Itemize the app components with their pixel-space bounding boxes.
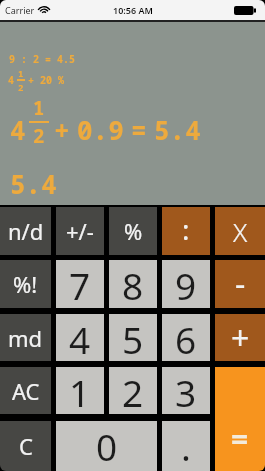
button[interactable]: - [215, 260, 265, 308]
staticText: %! [13, 269, 38, 299]
staticText: 2 [18, 81, 24, 93]
button[interactable]: md [0, 314, 51, 361]
button[interactable]: 1 [56, 367, 104, 414]
staticText: C [19, 431, 33, 461]
staticText: 1 [69, 367, 91, 414]
staticText: 0.9 [77, 112, 124, 147]
button[interactable]: 5 [109, 314, 157, 361]
staticText: 4 [10, 112, 26, 147]
button[interactable]: 6 [162, 314, 210, 361]
staticText: 7 [69, 260, 91, 308]
button[interactable]: 9 [162, 260, 210, 308]
staticText: AC [12, 376, 40, 406]
button[interactable]: : [162, 207, 210, 255]
button[interactable]: 2 [109, 367, 157, 414]
staticText: 9 : 2 = 4.5 [9, 52, 75, 66]
button[interactable]: 3 [162, 367, 210, 414]
staticText: 0 [96, 421, 118, 471]
button[interactable]: 4 [56, 314, 104, 361]
staticText: n/d [8, 216, 44, 246]
staticText: . [181, 421, 191, 471]
staticText: 4 [69, 314, 91, 361]
staticText: 10:56 AM [113, 4, 153, 16]
staticText: 5.4 [10, 166, 57, 201]
staticText: 3 [175, 367, 197, 414]
staticText: 8 [122, 260, 144, 308]
staticText: 1 [18, 67, 24, 79]
staticText: md [8, 323, 43, 353]
button[interactable]: 7 [56, 260, 104, 308]
button[interactable]: %! [0, 260, 51, 308]
staticText: = [131, 112, 147, 147]
button[interactable]: 8 [109, 260, 157, 308]
staticText: 2 [33, 123, 45, 149]
staticText: 5.4 [154, 112, 201, 147]
staticText: Carrier [5, 4, 35, 16]
button[interactable]: 0 [56, 421, 157, 471]
button[interactable]: X [215, 207, 265, 255]
button[interactable]: + [215, 314, 265, 361]
button[interactable]: AC [0, 367, 51, 414]
staticText: 1 [33, 95, 45, 121]
button[interactable]: . [162, 421, 210, 471]
staticText: : [182, 210, 190, 248]
button[interactable]: n/d [0, 207, 51, 255]
staticText: + [231, 316, 250, 360]
button[interactable]: = [215, 367, 265, 471]
staticText: +/- [66, 216, 94, 246]
staticText: X [233, 214, 248, 249]
staticText: 5 [122, 314, 144, 361]
staticText: 9 [175, 260, 197, 308]
staticText: 6 [175, 314, 197, 361]
button[interactable]: C [0, 421, 51, 471]
staticText: % [124, 216, 143, 246]
staticText: = [231, 418, 249, 459]
staticText: + 20 % [28, 73, 64, 87]
staticText: + [54, 112, 70, 147]
staticText: - [235, 262, 246, 306]
button[interactable]: % [109, 207, 157, 255]
staticText: 2 [122, 367, 144, 414]
button[interactable]: +/- [56, 207, 104, 255]
staticText: 4 [8, 73, 14, 87]
